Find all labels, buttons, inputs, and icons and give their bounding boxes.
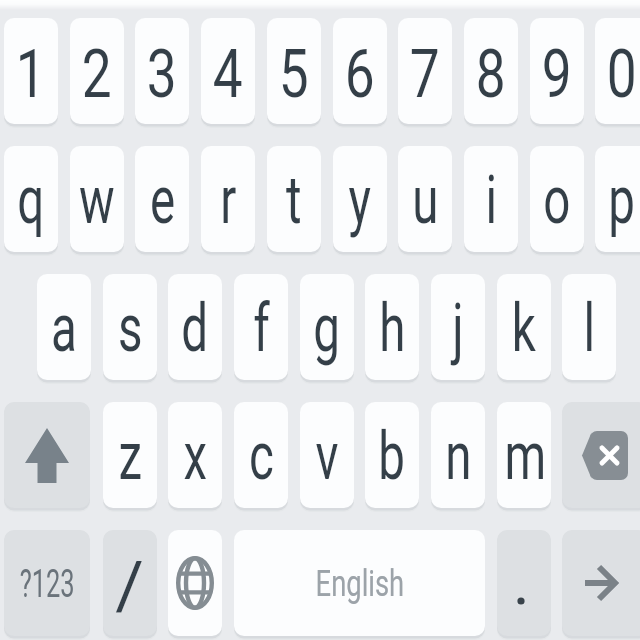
staticText: 9 — [542, 35, 572, 113]
staticText: 8 — [476, 35, 506, 113]
button[interactable]: i — [464, 146, 518, 252]
button[interactable]: c — [234, 402, 288, 508]
button[interactable]: g — [300, 274, 354, 380]
button[interactable]: a — [37, 274, 91, 380]
button[interactable]: w — [70, 146, 124, 252]
button[interactable]: t — [267, 146, 321, 252]
button[interactable]: b — [365, 402, 419, 508]
button[interactable]: q — [4, 146, 58, 252]
staticText: j — [452, 290, 464, 367]
staticText: h — [379, 290, 406, 367]
button[interactable]: d — [168, 274, 222, 380]
button[interactable]: 4 — [201, 18, 255, 124]
staticText: u — [412, 162, 439, 239]
staticText: v — [315, 418, 338, 495]
button[interactable]: 8 — [464, 18, 518, 124]
staticText: r — [220, 162, 237, 239]
staticText: c — [249, 418, 274, 495]
button[interactable]: 2 — [70, 18, 124, 124]
staticText: g — [313, 290, 341, 367]
staticText: 6 — [345, 35, 375, 113]
staticText: l — [583, 290, 596, 367]
staticText: English — [316, 562, 404, 605]
button[interactable]: / — [103, 530, 157, 636]
staticText: a — [51, 290, 77, 367]
button[interactable]: 0 — [595, 18, 640, 124]
button[interactable]: 3 — [135, 18, 189, 124]
staticText: x — [184, 418, 207, 495]
button[interactable]: y — [333, 146, 387, 252]
staticText: 7 — [410, 35, 440, 113]
button[interactable]: 5 — [267, 18, 321, 124]
staticText: i — [485, 162, 498, 239]
staticText: 5 — [279, 35, 309, 113]
button[interactable]: z — [103, 402, 157, 508]
button[interactable]: p — [595, 146, 640, 252]
staticText: 3 — [147, 35, 177, 113]
staticText: 4 — [213, 35, 243, 113]
button[interactable] — [497, 530, 551, 636]
button[interactable]: 9 — [530, 18, 584, 124]
staticText: s — [118, 290, 143, 367]
staticText: p — [608, 162, 636, 239]
staticText: 0 — [607, 35, 637, 113]
staticText: e — [150, 162, 175, 239]
button[interactable]: l — [562, 274, 616, 380]
staticText: q — [17, 162, 45, 239]
button[interactable] — [168, 530, 222, 636]
staticText: t — [286, 162, 302, 239]
staticText: n — [445, 418, 472, 495]
staticText: 1 — [16, 35, 46, 113]
button[interactable]: s — [103, 274, 157, 380]
button[interactable]: k — [497, 274, 551, 380]
button[interactable]: x — [168, 402, 222, 508]
staticText: 2 — [82, 35, 112, 113]
staticText: / — [115, 548, 145, 625]
button[interactable] — [4, 402, 90, 508]
button[interactable]: f — [234, 274, 288, 380]
button[interactable]: j — [431, 274, 485, 380]
button[interactable]: ?123 — [4, 530, 90, 636]
button[interactable]: 6 — [333, 18, 387, 124]
button[interactable]: 1 — [4, 18, 58, 124]
button[interactable] — [562, 402, 640, 508]
button[interactable]: e — [135, 146, 189, 252]
staticText: w — [79, 162, 115, 239]
staticText: d — [181, 290, 209, 367]
button[interactable]: m — [497, 402, 551, 508]
staticText: f — [253, 290, 270, 367]
staticText: o — [543, 162, 571, 239]
button[interactable]: 7 — [398, 18, 452, 124]
button[interactable]: h — [365, 274, 419, 380]
button[interactable]: o — [530, 146, 584, 252]
staticText: b — [378, 418, 406, 495]
staticText: ?123 — [20, 562, 75, 607]
button[interactable]: English — [234, 530, 485, 636]
button[interactable]: r — [201, 146, 255, 252]
staticText: k — [512, 290, 536, 367]
staticText: y — [348, 162, 371, 239]
button[interactable] — [562, 530, 640, 636]
button[interactable]: v — [300, 402, 354, 508]
button[interactable]: n — [431, 402, 485, 508]
button[interactable]: u — [398, 146, 452, 252]
staticText: z — [119, 418, 142, 495]
staticText: m — [505, 418, 543, 495]
